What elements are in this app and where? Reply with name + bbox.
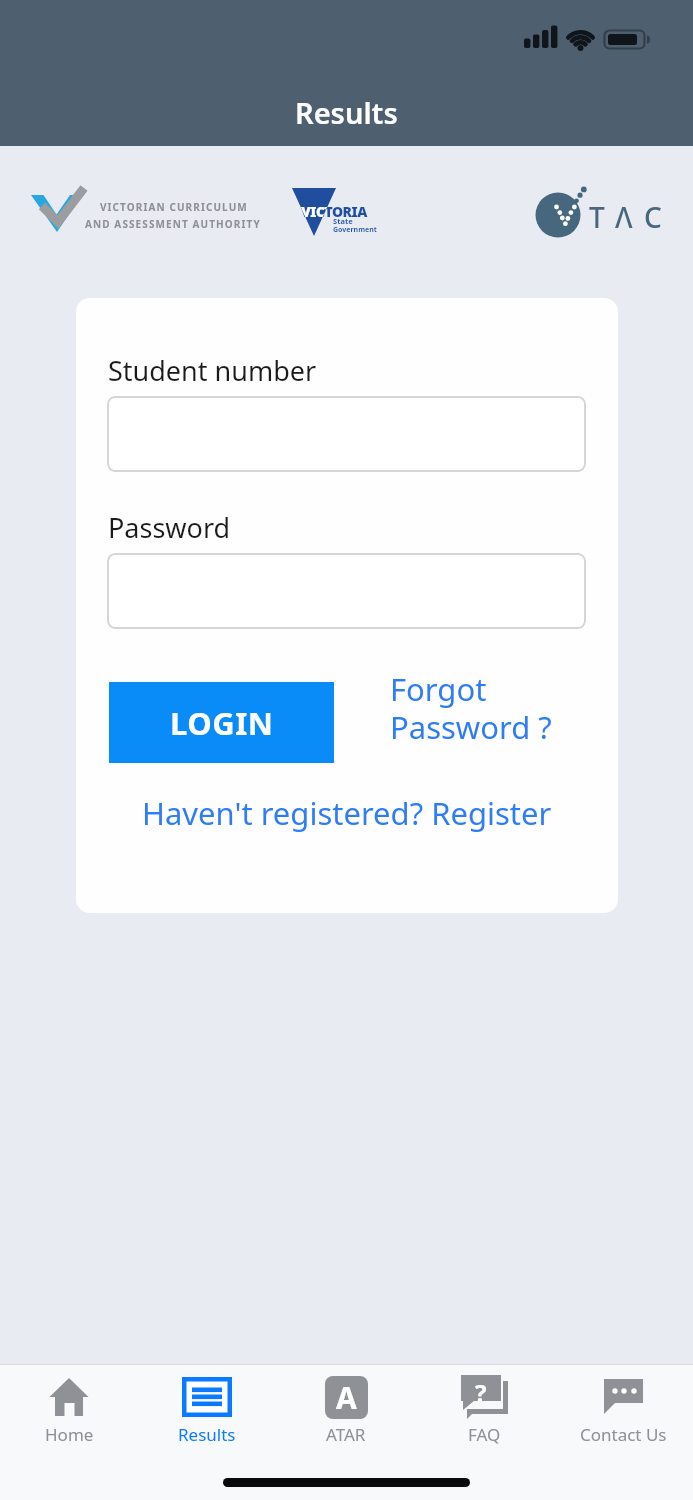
staticText: Password (108, 509, 231, 546)
staticText: LOGIN (170, 702, 274, 744)
staticText: C (644, 198, 662, 236)
staticText: A (336, 1377, 357, 1418)
staticText: Haven't registered? Register (142, 792, 552, 834)
button[interactable] (107, 553, 586, 629)
button[interactable]: Home (0, 1364, 138, 1500)
staticText: Results (295, 93, 398, 132)
staticText: VICTORIA (301, 202, 367, 221)
staticText: AND ASSESSMENT AUTHORITY (85, 217, 261, 231)
button[interactable]: Haven't registered? Register (76, 792, 618, 834)
staticText: State (333, 216, 353, 226)
staticText: ? (475, 1376, 487, 1409)
staticText: Home (45, 1423, 94, 1446)
staticText: VICTORIAN CURRICULUM (100, 200, 248, 214)
staticText: Student number (108, 352, 317, 389)
staticText: Results (178, 1423, 236, 1446)
button[interactable]: ? (415, 1364, 554, 1500)
staticText: Forgot Password ? (390, 668, 552, 748)
staticText: Contact Us (580, 1423, 667, 1446)
staticText: Government (333, 225, 377, 235)
staticText: FAQ (468, 1423, 501, 1446)
button[interactable]: Results (138, 1364, 276, 1500)
button[interactable]: Forgot Password ? (390, 668, 552, 748)
button[interactable]: Contact Us (554, 1364, 693, 1500)
staticText: Λ (615, 198, 633, 236)
staticText: ATAR (326, 1423, 366, 1446)
button[interactable] (107, 396, 586, 472)
staticText: VICTORIA (301, 202, 367, 221)
button[interactable]: LOGIN (109, 682, 334, 763)
staticText: T (589, 198, 605, 236)
button[interactable]: A (276, 1364, 415, 1500)
